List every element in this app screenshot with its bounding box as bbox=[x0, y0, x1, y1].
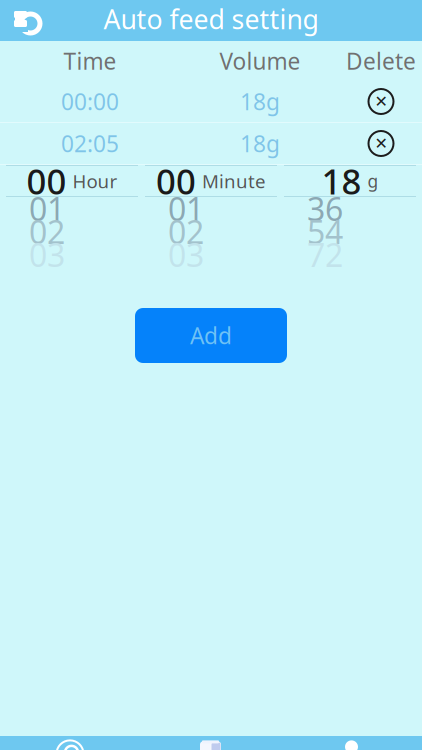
staticText: Time bbox=[63, 46, 116, 76]
staticText: 02 bbox=[168, 210, 204, 253]
staticText: 00 bbox=[156, 158, 196, 204]
button[interactable]: Delete 02:05 bbox=[340, 123, 422, 164]
staticText: 02:05 bbox=[61, 128, 119, 158]
staticText bbox=[368, 196, 373, 221]
staticText: 18g bbox=[240, 86, 280, 116]
staticText: ✕ bbox=[374, 134, 387, 153]
staticText: ✕ bbox=[374, 92, 387, 111]
staticText: 54 bbox=[307, 210, 343, 253]
staticText: 18g bbox=[240, 128, 280, 158]
staticText: 02 bbox=[29, 210, 65, 253]
button[interactable]: Delete 00:00 bbox=[340, 81, 422, 122]
staticText: Add bbox=[190, 320, 232, 350]
staticText: Volume bbox=[219, 46, 300, 76]
staticText bbox=[90, 196, 95, 221]
staticText: Hour bbox=[72, 169, 117, 193]
staticText bbox=[229, 196, 234, 221]
button[interactable]: Pettion bbox=[140, 736, 281, 750]
staticText: 01 bbox=[29, 187, 65, 230]
staticText: Minute bbox=[202, 169, 266, 193]
button[interactable]: User bbox=[281, 736, 422, 750]
button[interactable]: Q-Union bbox=[0, 736, 140, 750]
staticText: 00:00 bbox=[61, 86, 119, 116]
staticText: g bbox=[367, 169, 378, 192]
staticText: 18 bbox=[321, 158, 361, 204]
staticText: 01 bbox=[168, 187, 204, 230]
staticText: Auto feed setting bbox=[103, 1, 318, 37]
staticText: 72 bbox=[307, 233, 343, 276]
button[interactable]: Add bbox=[135, 308, 287, 363]
staticText: 03 bbox=[168, 233, 204, 276]
staticText: 03 bbox=[29, 233, 65, 276]
button[interactable]: Back bbox=[0, 0, 52, 41]
staticText: Delete bbox=[346, 46, 416, 76]
staticText: 36 bbox=[307, 187, 343, 230]
staticText: 00 bbox=[26, 158, 66, 204]
